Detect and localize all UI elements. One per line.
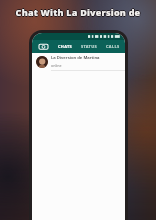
- staticText: Chat With La Diversion de Martina: [3, 5, 153, 17]
- button[interactable]: Camera: [32, 40, 54, 53]
- staticText: online: [51, 63, 62, 68]
- button[interactable]: STATUS: [77, 40, 101, 53]
- staticText: Chat With La Diversion de Martina: [3, 7, 153, 19]
- button[interactable]: CHATS: [54, 40, 77, 53]
- staticText: Chat With La Diversion de Martina: [2, 6, 152, 18]
- button[interactable]: La Diversion de Martina: [32, 53, 125, 70]
- staticText: CHATS: [58, 44, 73, 49]
- staticText: Chat With La Diversion de Martina: [4, 6, 154, 18]
- staticText: STATUS: [81, 44, 98, 49]
- button[interactable]: CALLS: [101, 40, 125, 53]
- staticText: CALLS: [106, 44, 120, 49]
- staticText: Chat With La Diversion de Martina: [3, 6, 153, 18]
- staticText: La Diversion de Martina: [51, 55, 100, 61]
